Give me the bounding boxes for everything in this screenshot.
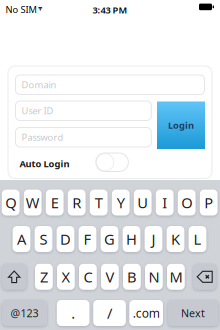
button[interactable]: Shift [2,264,27,290]
button[interactable]: F [79,226,96,252]
staticText: @123 [10,306,38,320]
staticText: P [204,193,213,212]
staticText: C [83,267,92,287]
staticText: O [181,193,192,212]
staticText: K [171,229,180,249]
staticText: V [105,267,114,287]
button[interactable]: L [189,226,206,252]
staticText: W [26,193,40,212]
staticText: R [72,193,81,212]
staticText: Z [40,267,48,287]
staticText: D [60,229,71,249]
staticText: J [151,229,155,249]
button[interactable]: . [57,300,89,326]
button[interactable]: K [167,226,184,252]
staticText: G [104,229,115,249]
staticText: Login [168,119,194,131]
button[interactable]: U [134,189,152,215]
staticText: H [126,229,137,249]
button[interactable]: H [123,226,140,252]
button[interactable]: .com [129,300,163,326]
staticText: B [127,267,137,287]
button[interactable]: P [200,189,218,215]
button[interactable]: Delete [193,264,216,290]
button[interactable]: R [68,189,86,215]
staticText: Next [181,306,205,320]
staticText: No SIM [5,3,36,16]
button[interactable]: N [145,264,163,290]
button[interactable]: Auto Login [96,153,128,171]
staticText: M [169,267,182,287]
staticText: U [137,193,148,212]
button[interactable]: X [57,264,75,290]
staticText: S [39,229,47,249]
button[interactable]: B [123,264,141,290]
staticText: 3:43 PM [92,4,127,16]
staticText: Password [21,131,63,143]
button[interactable]: W [24,189,42,215]
button[interactable]: Z [35,264,53,290]
button[interactable]: Y [112,189,130,215]
staticText: User ID [21,105,53,117]
staticText: Q [5,193,16,212]
staticText: / [107,303,112,323]
button[interactable]: V [101,264,119,290]
button[interactable]: T [90,189,108,215]
button[interactable]: M [167,264,185,290]
staticText: N [148,267,159,287]
button[interactable]: A [13,226,30,252]
staticText: I [162,193,167,212]
staticText: .com [133,305,160,321]
staticText: A [17,229,26,249]
button[interactable]: / [93,300,126,326]
button[interactable]: O [178,189,196,215]
button[interactable]: J [145,226,162,252]
button[interactable]: G [101,226,118,252]
button[interactable]: I [156,189,174,215]
staticText: . [71,303,75,323]
staticText: E [51,193,59,212]
staticText: Y [117,193,125,212]
button[interactable]: E [46,189,64,215]
staticText: T [95,193,103,212]
staticText: X [61,267,70,287]
staticText: Domain [21,79,56,91]
button[interactable]: @123 [2,300,47,326]
button[interactable]: D [57,226,74,252]
button[interactable]: Q [2,189,20,215]
button[interactable]: Next [168,300,218,326]
staticText: Auto Login [19,157,69,170]
button[interactable]: C [79,264,97,290]
staticText: L [193,229,201,249]
button[interactable]: S [35,226,52,252]
staticText: F [83,229,91,249]
button[interactable]: Login [157,101,205,149]
